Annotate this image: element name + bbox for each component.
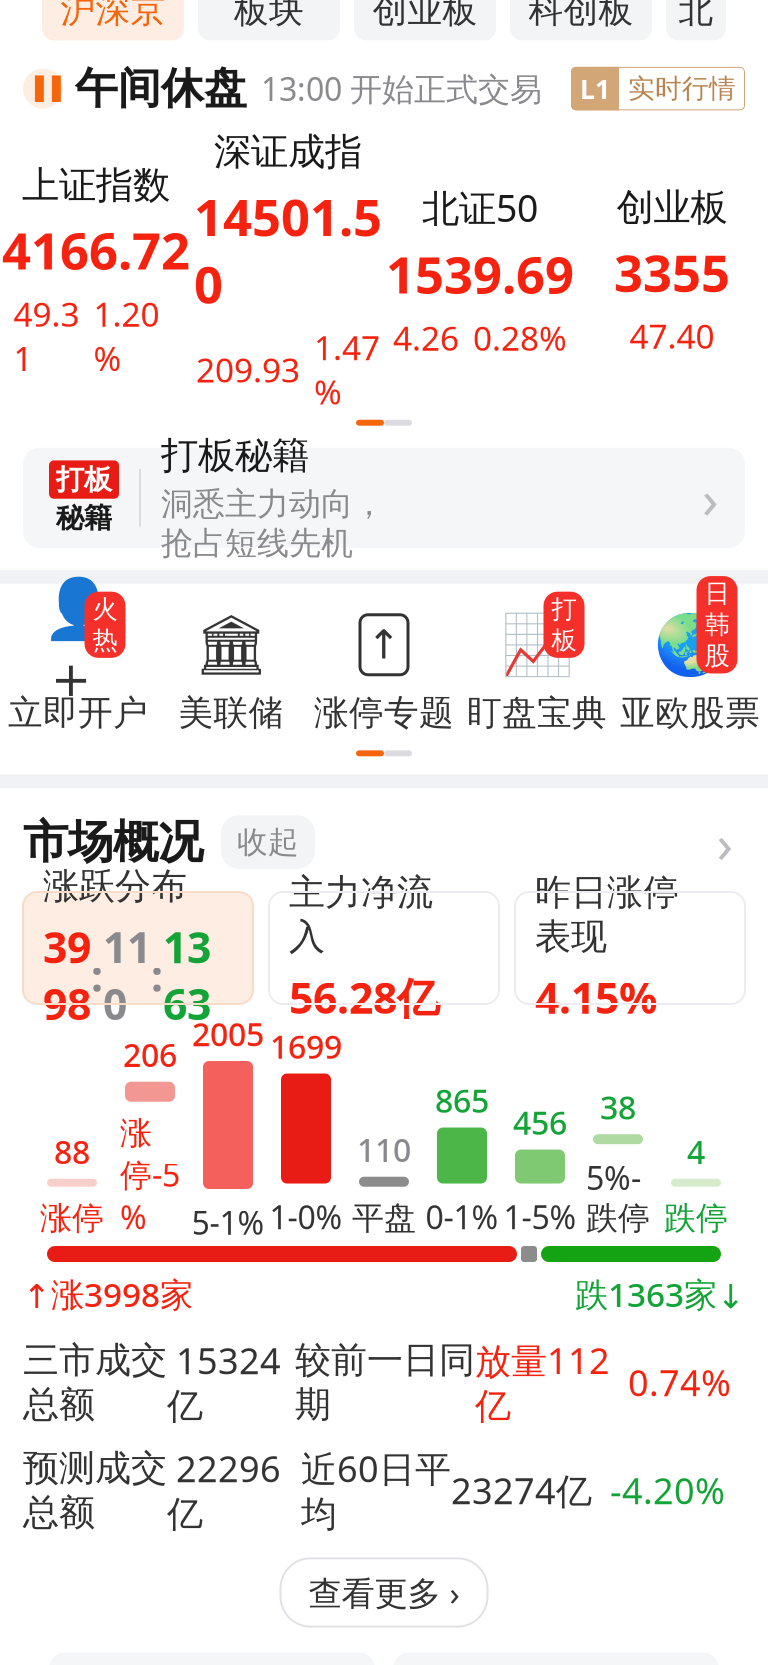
button[interactable]: 昨日涨停表现 [515,892,745,1004]
staticText: 456 [513,1101,567,1143]
staticText: 午间休盘 [75,62,247,115]
button[interactable]: 涨跃分布 [23,892,253,1004]
staticText: 涨停 [40,1199,104,1238]
staticText: 1363 [163,918,211,1032]
staticText: 49.31 [13,292,79,380]
button[interactable]: 北证50 [384,183,576,360]
staticText: 日韩股 [704,578,729,671]
staticText: 14501.50 [194,183,382,317]
staticText: 110 [357,1128,411,1171]
button[interactable]: 主力净流入 [269,892,499,1004]
staticText: 收起 [237,823,299,861]
staticText: 0.28% [473,316,567,360]
button[interactable]: 📈 [460,610,613,734]
staticText: : [91,947,103,1003]
button[interactable]: 👤＋ [1,610,154,734]
staticText: -4.20% [592,1466,725,1514]
staticText: 打板 [551,594,576,656]
staticText: 3998 [43,918,91,1032]
staticText: 立即开户 [8,692,148,734]
staticText: › [716,807,733,878]
button[interactable]: 创业板 [354,0,496,40]
staticText: 深证成指 [214,129,362,175]
button[interactable]: 上证指数 [0,162,192,380]
staticText: 打板 [56,462,112,497]
staticText: 市场概况 [23,814,203,870]
staticText: 206 [123,1033,177,1076]
staticText: 22296亿 [167,1444,281,1536]
staticText: 秘籍 [56,501,112,535]
staticText: 涨停专题 [314,692,454,734]
staticText: 3355 [614,238,730,306]
button[interactable]: 创业板 [576,185,768,358]
staticText: 38 [600,1086,636,1128]
staticText: 4.15% [535,969,657,1026]
button[interactable]: 沪深京 [42,0,184,40]
staticText: 23274亿 [451,1466,592,1514]
staticText: ▐▐ [26,76,60,101]
staticText: 4.26 [393,316,459,360]
staticText: 洞悉主力动向，抢占短线先机 [161,484,385,563]
staticText: 13:00 开始正式交易 [261,67,542,110]
staticText: 近60日平均 [301,1444,451,1536]
staticText: 0.74% [610,1358,731,1406]
staticText: 主力净流入 [289,870,433,959]
staticText: L1 [580,71,610,106]
staticText: 三市成交总额 [23,1338,167,1426]
button[interactable]: 板块 [198,0,340,40]
staticText: 昨日涨停表现 [535,870,679,959]
staticText: 47.40 [629,314,714,358]
staticText: 1-0% [269,1195,342,1238]
button[interactable]: 🏛 [154,610,307,734]
staticText: › [702,462,719,533]
staticText: 火热 [92,594,117,656]
staticText: 美联储 [178,692,283,734]
staticText: 🏛 [194,611,268,678]
staticText: 56.28亿 [289,969,440,1026]
staticText: 📈 [500,611,573,678]
staticText: 科创板 [528,0,633,32]
staticText: 4 [687,1130,705,1173]
staticText: 沪深京 [60,0,165,32]
staticText: 查看更多 › [308,1570,459,1615]
staticText: 4166.72 [2,216,190,284]
button[interactable]: 收起 [221,815,315,869]
staticText: 创业板 [372,0,477,32]
staticText: 放量112亿 [475,1336,610,1428]
staticText: : [151,947,163,1003]
button[interactable]: 北 [666,0,726,40]
staticText: 1699 [270,1025,342,1067]
button[interactable]: 🌏 [613,610,766,734]
button[interactable]: 打板 [0,426,768,570]
staticText: ↑涨3998家 [23,1272,193,1316]
staticText: 板块 [234,0,304,32]
staticText: ↑ [367,622,401,667]
button[interactable]: 科创板 [510,0,652,40]
staticText: 较前一日同期 [295,1338,475,1426]
staticText: 北 [678,0,713,32]
staticText: 预测成交总额 [23,1446,167,1534]
staticText: 上证指数 [22,162,170,208]
staticText: 1.47% [314,325,380,414]
staticText: 1.20% [93,292,159,380]
button[interactable]: ↑ [307,610,460,734]
staticText: 跌停 [664,1199,728,1238]
staticText: 209.93 [196,347,300,392]
staticText: 110 [103,918,151,1032]
staticText: 创业板 [616,185,727,230]
staticText: 1539.69 [386,240,574,308]
staticText: 88 [54,1130,90,1173]
staticText: 盯盘宝典 [467,692,607,734]
button[interactable]: 深证成指 [192,129,384,414]
staticText: 5-1% [191,1201,264,1243]
button[interactable]: 更多 [705,817,745,867]
staticText: 平盘 [352,1199,416,1238]
button[interactable]: 查看更多 › [280,1558,487,1627]
staticText: 15324亿 [167,1336,281,1428]
staticText: 0-1% [425,1195,498,1238]
staticText: 5%-跌停 [586,1156,650,1238]
staticText: 2005 [192,1012,264,1055]
staticText: 北证50 [422,183,538,232]
